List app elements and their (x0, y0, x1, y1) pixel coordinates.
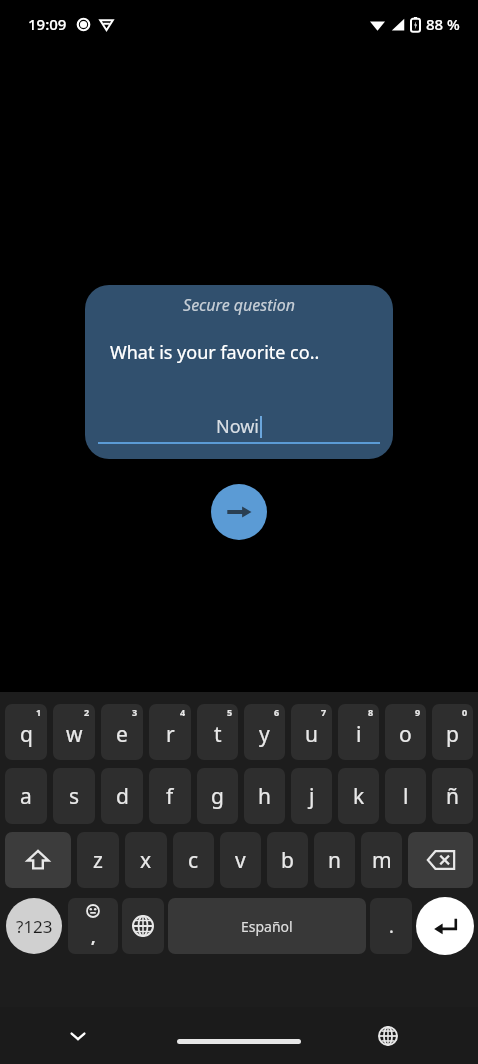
staticText: z (93, 846, 103, 875)
button[interactable]: Switch input method (368, 1016, 408, 1056)
button[interactable]: ?123 (6, 898, 62, 954)
staticText: 4 (180, 706, 186, 718)
staticText: c (188, 846, 199, 875)
button[interactable]: Change language (122, 898, 164, 954)
staticText: 2 (84, 706, 90, 718)
button[interactable]: 0 (432, 704, 473, 760)
staticText: 8 (368, 706, 374, 718)
staticText: s (69, 782, 80, 811)
button[interactable]: l (385, 768, 426, 824)
staticText: a (20, 782, 32, 811)
button[interactable]: Enter (416, 897, 474, 955)
staticText: 9 (415, 706, 421, 718)
staticText: e (116, 720, 128, 749)
staticText: f (166, 782, 174, 811)
button[interactable]: 6 (244, 704, 285, 760)
button[interactable]: s (53, 768, 95, 824)
button[interactable]: d (101, 768, 143, 824)
button[interactable]: Secure question (85, 285, 393, 459)
staticText: o (399, 720, 412, 749)
button[interactable]: b (267, 832, 308, 888)
button[interactable]: g (197, 768, 238, 824)
button[interactable]: c (173, 832, 214, 888)
button[interactable]: ñ (432, 768, 473, 824)
staticText: 3 (132, 706, 138, 718)
button[interactable]: Shift (5, 832, 71, 888)
button[interactable]: a (5, 768, 47, 824)
staticText: Nowi (216, 414, 260, 439)
button[interactable]: 9 (385, 704, 426, 760)
button[interactable]: Submit (211, 484, 267, 540)
button[interactable]: v (220, 832, 261, 888)
button[interactable]: j (291, 768, 332, 824)
staticText: 19:09 (28, 14, 67, 34)
staticText: u (305, 720, 318, 749)
button[interactable]: k (338, 768, 379, 824)
staticText: v (235, 846, 246, 875)
staticText: ñ (446, 782, 459, 811)
staticText: 7 (321, 706, 327, 718)
staticText: n (328, 846, 341, 875)
button[interactable]: . (370, 898, 412, 954)
button[interactable]: n (314, 832, 355, 888)
staticText: i (356, 720, 362, 749)
staticText: r (166, 720, 175, 749)
staticText: t (214, 720, 222, 749)
staticText: g (211, 782, 224, 811)
button[interactable]: 3 (101, 704, 143, 760)
button[interactable]: Backspace (408, 832, 473, 888)
button[interactable]: 7 (291, 704, 332, 760)
button[interactable]: m (361, 832, 402, 888)
staticText: . (389, 914, 394, 939)
button[interactable]: x (125, 832, 167, 888)
button[interactable]: 1 (5, 704, 47, 760)
button[interactable]: 4 (149, 704, 191, 760)
staticText: 88 % (426, 14, 460, 34)
staticText: Español (241, 917, 293, 936)
staticText: 1 (36, 706, 42, 718)
staticText: , (91, 926, 96, 948)
staticText: Secure question (85, 294, 393, 316)
button[interactable]: 8 (338, 704, 379, 760)
staticText: b (281, 846, 294, 875)
staticText: What is your favorite co.. (110, 340, 320, 365)
button[interactable]: 5 (197, 704, 238, 760)
staticText: 6 (274, 706, 280, 718)
button[interactable]: Emoji and comma (68, 898, 118, 954)
staticText: w (66, 720, 83, 749)
staticText: p (446, 720, 459, 749)
staticText: 0 (462, 706, 468, 718)
staticText: x (140, 846, 152, 875)
staticText: ?123 (16, 915, 53, 938)
button[interactable]: Hide keyboard (58, 1016, 98, 1056)
button[interactable]: 2 (53, 704, 95, 760)
staticText: j (309, 782, 315, 811)
staticText: m (372, 846, 392, 875)
staticText: d (116, 782, 129, 811)
staticText: q (20, 720, 33, 749)
staticText: l (403, 782, 409, 811)
staticText: h (258, 782, 271, 811)
button[interactable]: f (149, 768, 191, 824)
button[interactable]: Español (168, 898, 366, 954)
button[interactable]: z (77, 832, 119, 888)
staticText: y (259, 720, 270, 749)
button[interactable]: h (244, 768, 285, 824)
staticText: k (353, 782, 365, 811)
staticText: 5 (227, 706, 233, 718)
